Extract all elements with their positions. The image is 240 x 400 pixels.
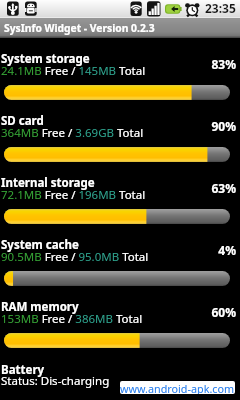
staticText: 153MB Free / 386MB Total xyxy=(1,311,143,327)
button[interactable]: SD card xyxy=(0,117,240,179)
staticText: 83% xyxy=(211,56,236,72)
staticText: 4% xyxy=(218,242,236,258)
staticText: Status: Dis-charging xyxy=(1,373,110,389)
staticText: System storage xyxy=(1,51,90,67)
staticText: RAM memory xyxy=(1,299,79,315)
button[interactable]: Android system notification xyxy=(24,0,38,18)
staticText: 72.1MB Free / 196MB Total xyxy=(1,187,146,203)
button[interactable]: System cache xyxy=(0,241,240,303)
button[interactable]: RAM memory xyxy=(0,303,240,365)
button[interactable]: System storage xyxy=(0,55,240,117)
other: Wi-Fi, signal, battery charging, alarm s… xyxy=(128,0,200,18)
staticText: Internal storage xyxy=(1,175,95,191)
staticText: SD card xyxy=(1,113,44,129)
staticText: 90% xyxy=(211,118,236,134)
staticText: Battery xyxy=(1,362,45,378)
button[interactable]: Battery xyxy=(0,365,240,400)
staticText: 364MB Free / 3.69GB Total xyxy=(1,125,144,141)
button[interactable]: www.android-apk.com xyxy=(120,381,235,394)
staticText: System cache xyxy=(1,237,79,253)
staticText: www.android-apk.com xyxy=(120,381,235,394)
staticText: 24.1MB Free / 145MB Total xyxy=(1,63,146,79)
button[interactable]: Internal storage xyxy=(0,179,240,241)
staticText: 90.5MB Free / 95.0MB Total xyxy=(1,249,149,265)
button[interactable]: SysInfo Widget - Version 0.2.3 xyxy=(0,18,240,38)
staticText: 63% xyxy=(211,180,236,196)
staticText: 23:35 xyxy=(205,0,236,16)
button[interactable]: USB connected xyxy=(6,0,20,18)
staticText: SysInfo Widget - Version 0.2.3 xyxy=(4,21,155,35)
staticText: 60% xyxy=(211,304,236,320)
